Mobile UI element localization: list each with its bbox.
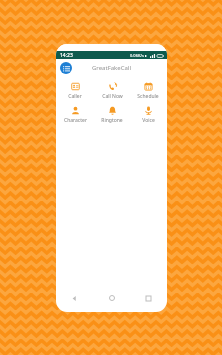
- staticText: Caller: [68, 93, 82, 100]
- staticText: Call Now: [102, 93, 123, 100]
- staticText: Voice: [142, 117, 155, 124]
- button[interactable]: Call Now: [95, 81, 129, 101]
- button[interactable]: Home: [93, 289, 130, 307]
- staticText: 0.06K/s: [130, 53, 144, 58]
- staticText: GreatFakeCall: [92, 64, 131, 72]
- button[interactable]: Schedule: [131, 81, 165, 101]
- button[interactable]: Recents: [130, 289, 167, 307]
- staticText: Ringtone: [101, 117, 123, 124]
- staticText: Character: [64, 117, 87, 124]
- staticText: Schedule: [137, 93, 159, 100]
- button[interactable]: Menu: [60, 62, 72, 74]
- button[interactable]: Voice: [131, 105, 165, 125]
- button[interactable]: Caller: [58, 81, 92, 101]
- button[interactable]: Character: [58, 105, 92, 125]
- staticText: 14:23: [60, 52, 73, 59]
- button[interactable]: Ringtone: [95, 105, 129, 125]
- button[interactable]: Back: [56, 289, 93, 307]
